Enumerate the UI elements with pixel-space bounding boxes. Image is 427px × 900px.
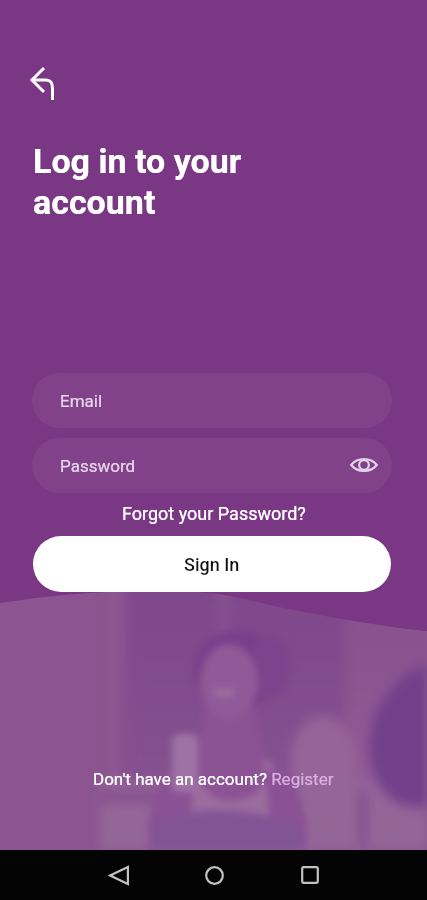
button[interactable]: Password xyxy=(32,438,392,493)
button[interactable]: Email xyxy=(32,373,392,428)
button[interactable]: Don't have an account? Register xyxy=(83,765,344,793)
staticText: Log in to your account xyxy=(33,141,242,223)
button[interactable]: Show password xyxy=(342,443,386,487)
staticText: Forgot your Password? xyxy=(122,503,306,524)
button[interactable]: Recent apps xyxy=(286,850,334,900)
staticText: Email xyxy=(60,391,103,411)
staticText: Sign In xyxy=(184,554,240,575)
button[interactable]: Sign In xyxy=(33,536,391,592)
button[interactable]: Forgot your Password? xyxy=(112,499,316,528)
staticText: Don't have an account? Register xyxy=(93,769,334,789)
button[interactable]: Back xyxy=(95,850,143,900)
staticText: Password xyxy=(60,456,136,476)
button[interactable]: Back xyxy=(26,58,70,102)
button[interactable]: Home xyxy=(190,850,238,900)
